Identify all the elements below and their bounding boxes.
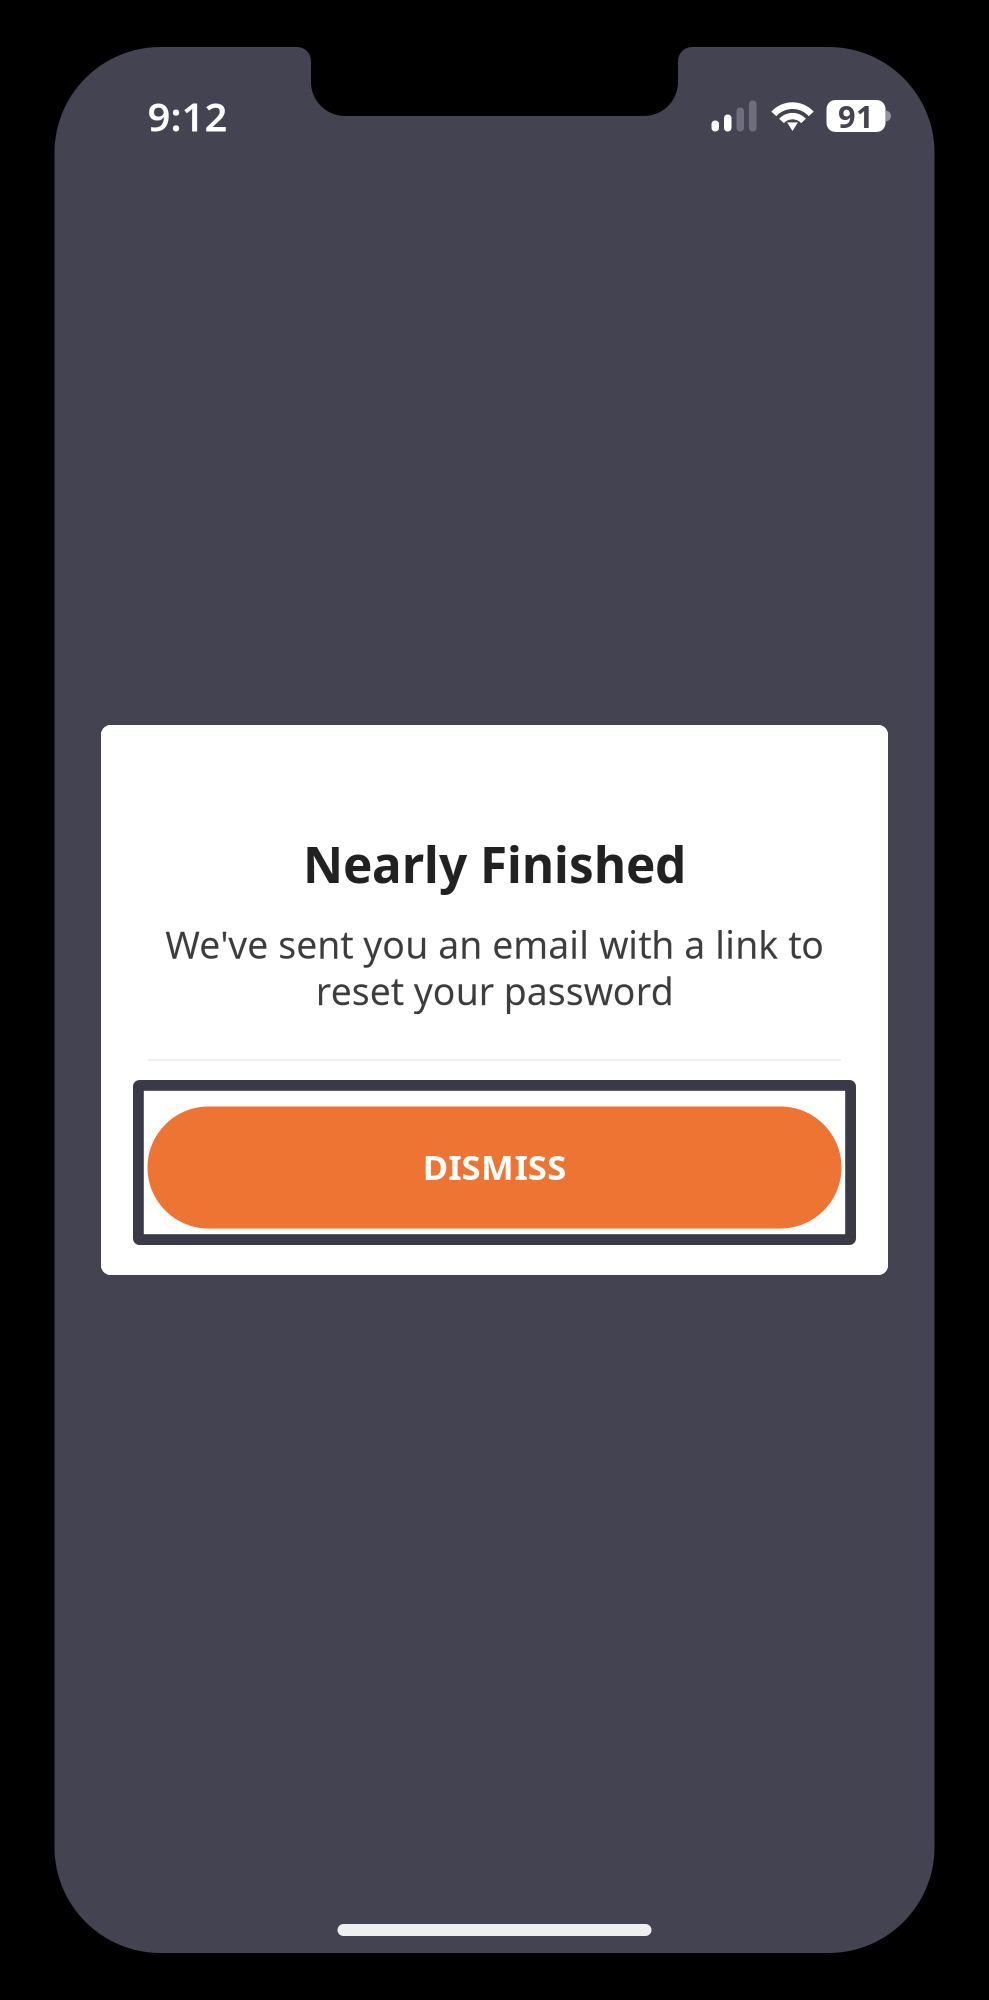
staticText: 91 <box>838 96 874 136</box>
staticText: S <box>547 1143 566 1189</box>
staticText: M <box>481 1143 514 1189</box>
staticText: S <box>528 1143 547 1189</box>
staticText: D <box>423 1143 448 1189</box>
staticText: S <box>462 1143 481 1189</box>
staticText: We've sent you an email with a link to r… <box>165 919 824 1016</box>
staticText: I <box>448 1143 461 1189</box>
button[interactable]: D <box>133 1080 856 1245</box>
staticText: 9:12 <box>147 89 227 142</box>
staticText: I <box>514 1143 527 1189</box>
staticText: Nearly Finished <box>303 831 686 896</box>
